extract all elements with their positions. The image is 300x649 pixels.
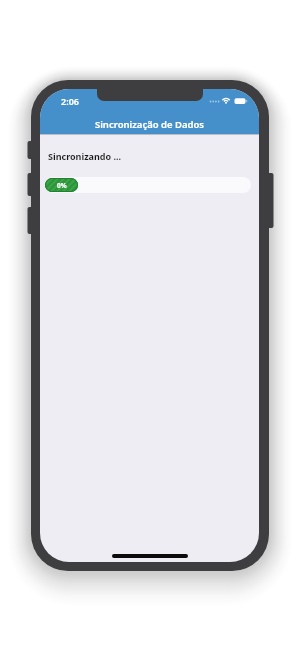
staticText: 2:06	[48, 95, 92, 108]
staticText: Sincronizando ...	[48, 150, 122, 162]
staticText: 0%	[57, 181, 67, 190]
staticText: Sincronização de Dados	[40, 118, 259, 131]
